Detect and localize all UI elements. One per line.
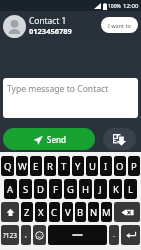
staticText: I bbox=[104, 160, 108, 173]
button[interactable]: C bbox=[49, 202, 60, 222]
button[interactable]: P bbox=[128, 156, 140, 176]
staticText: 12:00 bbox=[123, 2, 139, 10]
staticText: Type message to Contact bbox=[7, 83, 109, 95]
button[interactable]: S bbox=[19, 179, 32, 199]
button[interactable]: Contact avatar bbox=[3, 15, 26, 38]
button[interactable]: K bbox=[109, 179, 122, 199]
staticText: M bbox=[102, 206, 111, 219]
staticText: Contact 1 bbox=[29, 15, 67, 26]
button[interactable]: X bbox=[35, 202, 47, 222]
staticText: K bbox=[113, 183, 119, 196]
staticText: . bbox=[113, 230, 115, 240]
staticText: W bbox=[18, 160, 27, 173]
button[interactable]: T bbox=[58, 156, 70, 176]
button[interactable]: A bbox=[4, 179, 17, 199]
staticText: A bbox=[7, 183, 14, 196]
button[interactable]: ?123 bbox=[1, 225, 19, 245]
button[interactable]: Send bbox=[3, 128, 95, 150]
staticText: F bbox=[53, 183, 58, 196]
button[interactable]: Type message to Contact bbox=[3, 78, 138, 118]
button[interactable]: Space bbox=[48, 225, 107, 245]
button[interactable]: O bbox=[114, 156, 126, 176]
staticText: , bbox=[25, 230, 27, 240]
staticText: E bbox=[33, 160, 39, 173]
button[interactable]: . bbox=[109, 225, 119, 245]
staticText: D bbox=[37, 183, 44, 196]
button[interactable]: D bbox=[34, 179, 47, 199]
staticText: R bbox=[47, 160, 53, 173]
button[interactable]: , bbox=[21, 225, 31, 245]
button[interactable]: F bbox=[49, 179, 62, 199]
staticText: Z bbox=[24, 206, 30, 219]
staticText: Send bbox=[47, 134, 66, 145]
staticText: C bbox=[51, 206, 58, 219]
button[interactable]: Emoji bbox=[33, 225, 46, 245]
staticText: Y bbox=[75, 160, 81, 173]
button[interactable]: J bbox=[94, 179, 107, 199]
staticText: 0123456789 bbox=[29, 26, 72, 36]
staticText: U bbox=[89, 160, 96, 173]
staticText: J bbox=[99, 183, 102, 196]
button[interactable]: Shift bbox=[1, 202, 19, 222]
button[interactable]: I want to bbox=[101, 17, 138, 33]
button[interactable]: Backspace bbox=[114, 202, 140, 222]
staticText: T bbox=[61, 160, 67, 173]
button[interactable]: U bbox=[86, 156, 98, 176]
button[interactable]: N bbox=[88, 202, 99, 222]
button[interactable]: V bbox=[62, 202, 73, 222]
button[interactable]: M bbox=[101, 202, 112, 222]
button[interactable]: Y bbox=[72, 156, 84, 176]
staticText: L bbox=[128, 183, 133, 196]
button[interactable]: H bbox=[79, 179, 92, 199]
button[interactable]: W bbox=[16, 156, 28, 176]
button[interactable]: Z bbox=[21, 202, 33, 222]
staticText: P bbox=[131, 160, 137, 173]
button[interactable]: Enter bbox=[121, 225, 140, 245]
staticText: N bbox=[90, 206, 98, 219]
button[interactable]: E bbox=[30, 156, 42, 176]
staticText: V bbox=[65, 206, 71, 219]
button[interactable]: R bbox=[44, 156, 56, 176]
button[interactable]: G bbox=[64, 179, 77, 199]
button[interactable]: I bbox=[100, 156, 112, 176]
button[interactable]: L bbox=[124, 179, 137, 199]
staticText: G bbox=[67, 183, 74, 196]
staticText: H bbox=[82, 183, 90, 196]
staticText: X bbox=[38, 206, 44, 219]
staticText: O bbox=[116, 160, 124, 173]
staticText: Q bbox=[4, 160, 12, 173]
staticText: 100% bbox=[108, 3, 121, 10]
staticText: ?123 bbox=[3, 231, 17, 240]
button[interactable]: B bbox=[75, 202, 86, 222]
staticText: S bbox=[23, 183, 29, 196]
staticText: B bbox=[77, 206, 84, 219]
button[interactable]: Save message bbox=[103, 128, 136, 150]
button[interactable]: Q bbox=[1, 156, 14, 176]
staticText: I want to bbox=[108, 22, 131, 29]
